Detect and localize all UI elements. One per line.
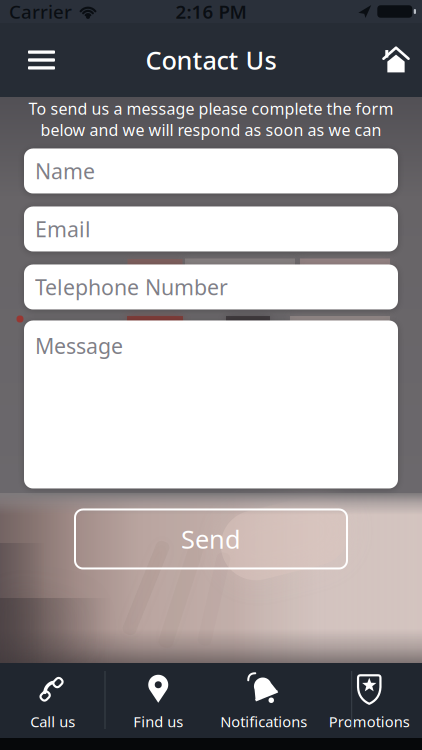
- button[interactable]: Notifications: [211, 663, 316, 737]
- staticText: Name: [35, 157, 95, 185]
- staticText: Email: [35, 215, 91, 243]
- staticText: Find us: [133, 712, 183, 731]
- button[interactable]: Promotions: [316, 663, 422, 737]
- textField[interactable]: Telephone Number: [24, 264, 398, 309]
- button[interactable]: Menu: [0, 36, 55, 84]
- button[interactable]: Find us: [105, 663, 211, 737]
- textField[interactable]: Name: [24, 148, 398, 193]
- staticText: Call us: [30, 712, 75, 731]
- staticText: below and we will respond as soon as we …: [40, 119, 381, 140]
- staticText: Telephone Number: [35, 273, 228, 301]
- staticText: Send: [181, 522, 241, 556]
- staticText: Promotions: [329, 712, 410, 731]
- button[interactable]: Home: [383, 34, 422, 86]
- staticText: 2:16 PM: [175, 0, 246, 24]
- staticText: Carrier: [9, 0, 72, 24]
- button[interactable]: Call us: [0, 663, 105, 737]
- staticText: To send us a message please complete the…: [28, 98, 393, 119]
- textField[interactable]: Email: [24, 206, 398, 251]
- staticText: Message: [35, 331, 123, 360]
- textField[interactable]: Message: [24, 320, 398, 488]
- staticText: Notifications: [220, 712, 307, 731]
- button[interactable]: Send: [74, 508, 348, 569]
- staticText: Contact Us: [145, 43, 276, 77]
